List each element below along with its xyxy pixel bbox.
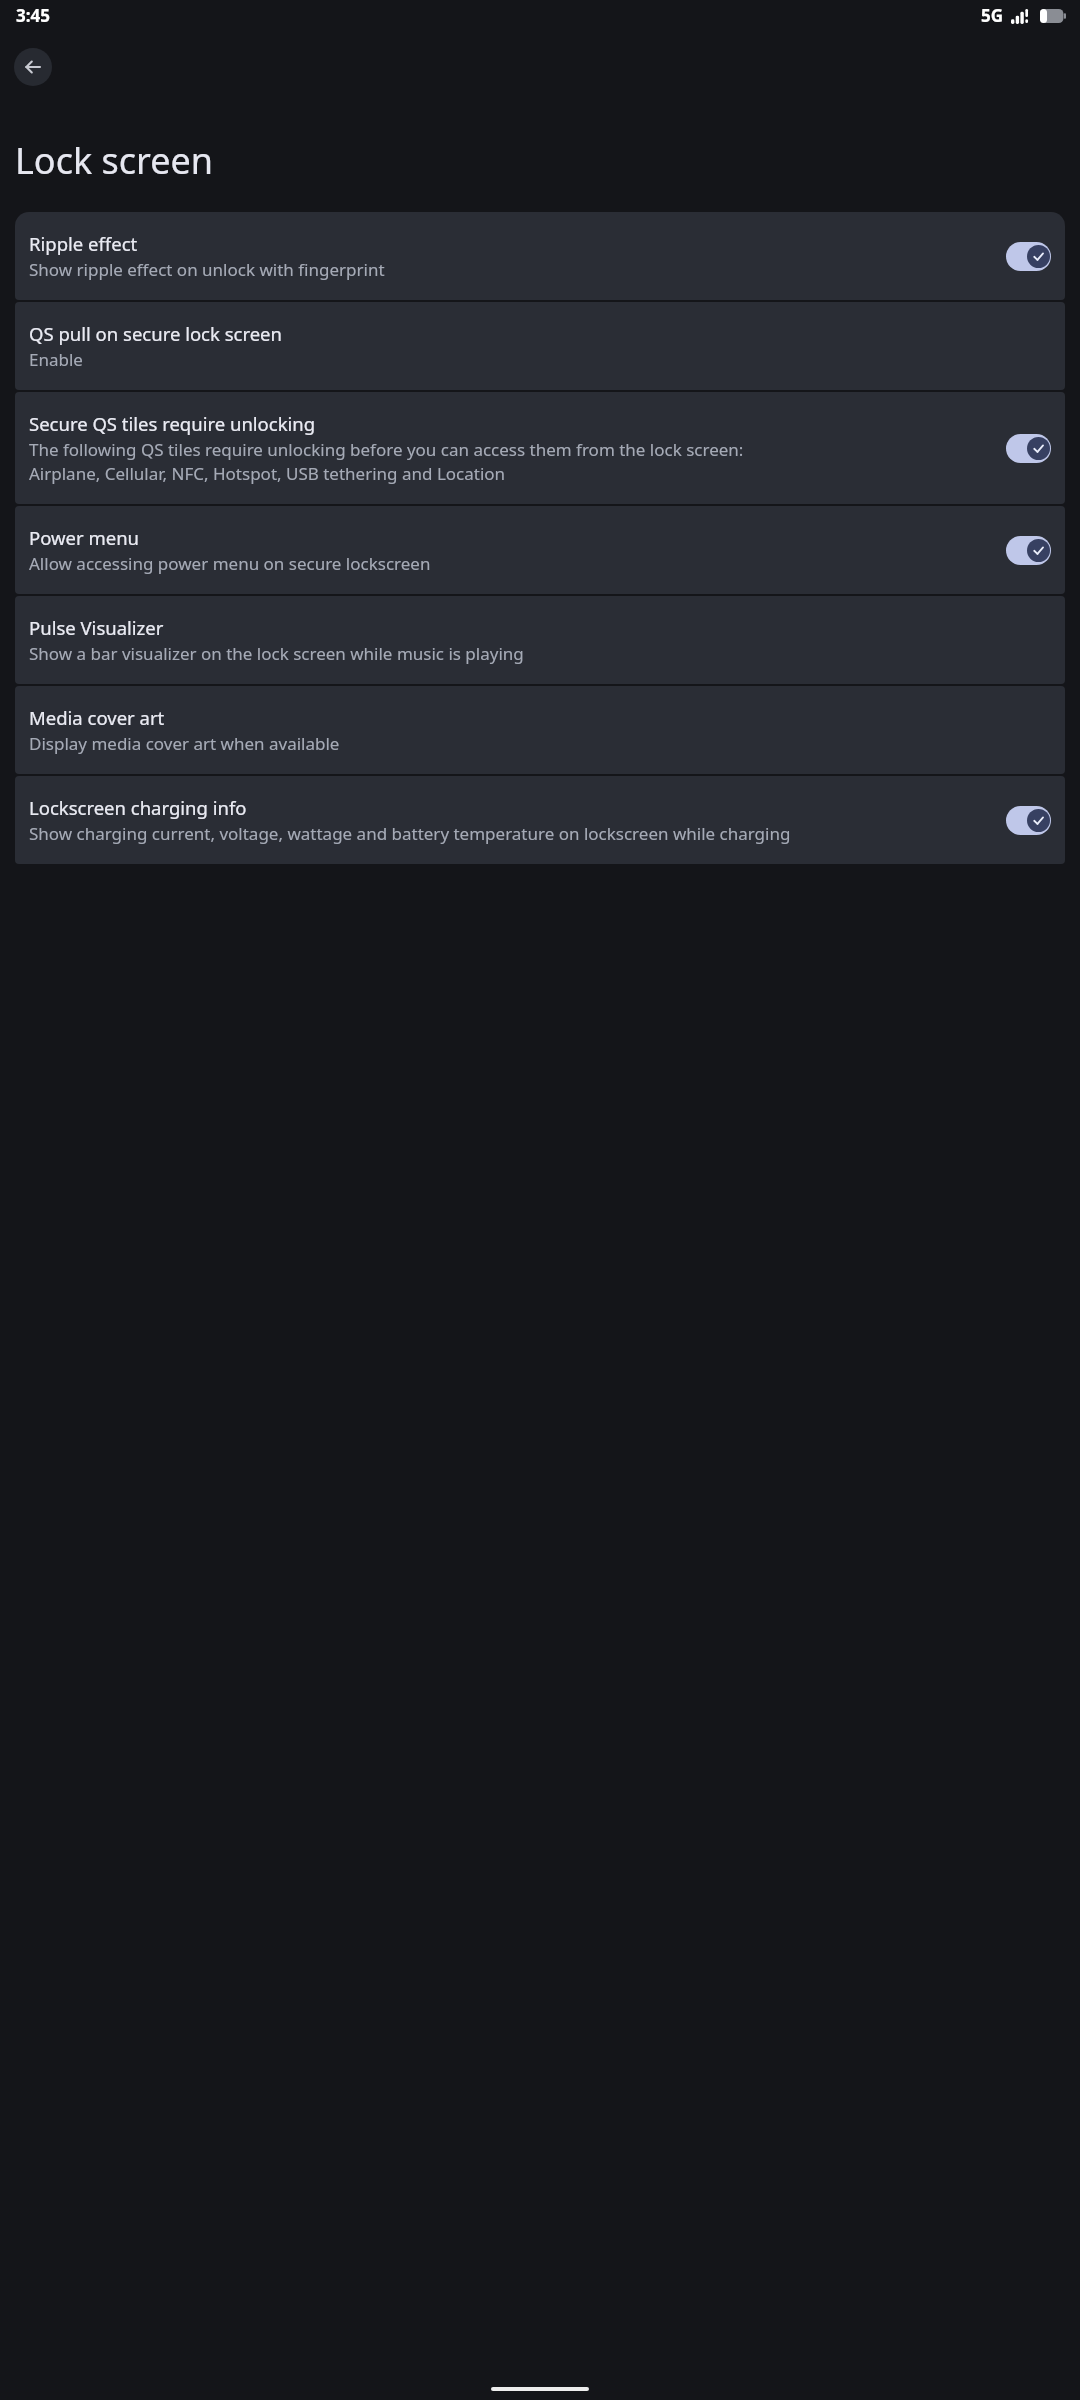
staticText: Lockscreen charging info xyxy=(29,795,247,820)
button[interactable]: Pulse Visualizer xyxy=(15,596,1065,684)
staticText: Show ripple effect on unlock with finger… xyxy=(29,258,385,281)
button[interactable]: QS pull on secure lock screen xyxy=(15,302,1065,390)
staticText: Media cover art xyxy=(29,705,165,730)
button[interactable]: Back xyxy=(14,48,52,86)
staticText: Ripple effect xyxy=(29,231,138,256)
button[interactable]: Lockscreen charging info xyxy=(15,776,1065,864)
staticText: Show a bar visualizer on the lock screen… xyxy=(29,642,524,665)
button[interactable]: Power menu xyxy=(15,506,1065,594)
button[interactable]: Toggle xyxy=(1006,434,1051,463)
staticText: QS pull on secure lock screen xyxy=(29,321,282,346)
staticText: Show charging current, voltage, wattage … xyxy=(29,822,791,845)
button[interactable]: Toggle xyxy=(1006,806,1051,835)
button[interactable]: Media cover art xyxy=(15,686,1065,774)
staticText: Pulse Visualizer xyxy=(29,615,164,640)
button[interactable]: Toggle xyxy=(1006,536,1051,565)
staticText: Power menu xyxy=(29,525,140,550)
staticText: Secure QS tiles require unlocking xyxy=(29,411,316,436)
button[interactable]: Secure QS tiles require unlocking xyxy=(15,392,1065,504)
staticText: 5G xyxy=(981,4,1004,27)
staticText: Allow accessing power menu on secure loc… xyxy=(29,552,431,575)
staticText: Display media cover art when available xyxy=(29,732,340,755)
staticText: Enable xyxy=(29,348,83,371)
staticText: The following QS tiles require unlocking… xyxy=(29,438,744,485)
staticText: 3:45 xyxy=(16,4,50,27)
staticText: Lock screen xyxy=(15,136,214,185)
button[interactable]: Ripple effect xyxy=(15,212,1065,300)
button[interactable]: Toggle xyxy=(1006,242,1051,271)
